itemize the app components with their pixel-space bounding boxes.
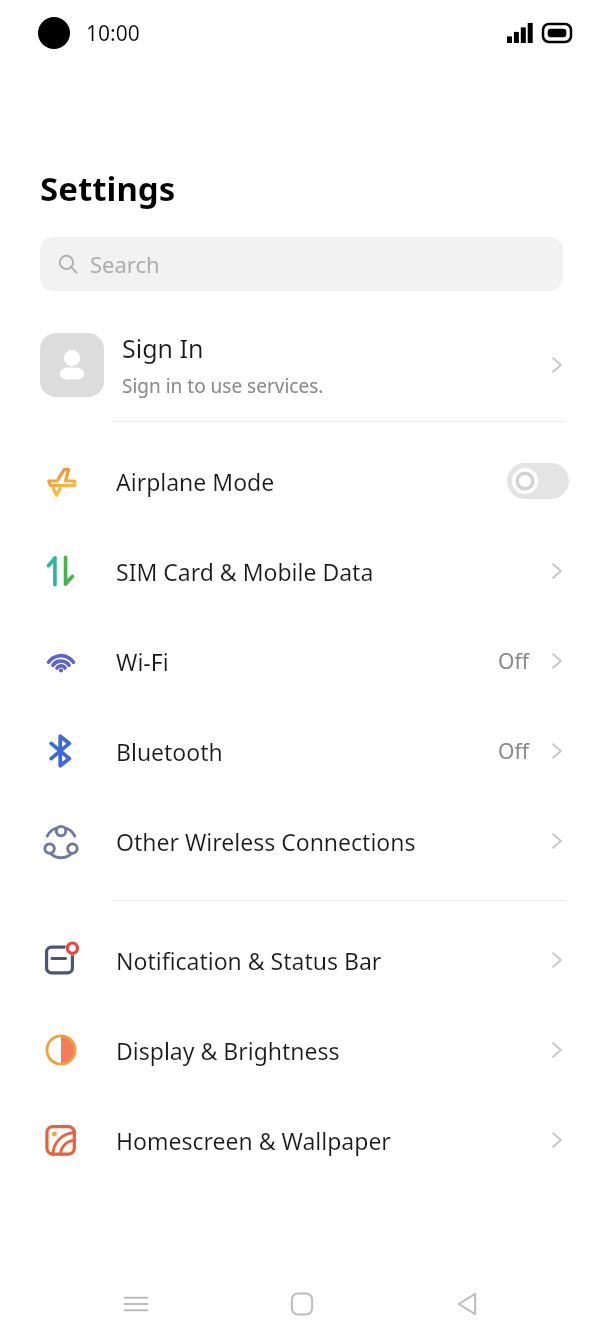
button[interactable]: Airplane Mode toggle, off bbox=[507, 463, 569, 499]
staticText: Sign In bbox=[122, 331, 204, 365]
staticText: Bluetooth bbox=[116, 736, 223, 767]
staticText: 10:00 bbox=[86, 19, 140, 48]
staticText: Notification & Status Bar bbox=[116, 945, 382, 976]
staticText: Display & Brightness bbox=[116, 1035, 340, 1066]
button[interactable]: Wi-Fi bbox=[0, 616, 603, 706]
button[interactable]: Sign In bbox=[0, 319, 603, 411]
button[interactable]: Homescreen & Wallpaper bbox=[0, 1095, 603, 1185]
button[interactable]: Display & Brightness bbox=[0, 1005, 603, 1095]
staticText: Off bbox=[498, 647, 529, 676]
staticText: SIM Card & Mobile Data bbox=[116, 556, 374, 587]
staticText: Homescreen & Wallpaper bbox=[116, 1125, 391, 1156]
button[interactable]: Airplane Mode bbox=[0, 436, 603, 526]
button[interactable]: Notification & Status Bar bbox=[0, 915, 603, 1005]
staticText: Other Wireless Connections bbox=[116, 826, 416, 857]
staticText: Settings bbox=[40, 166, 176, 211]
button[interactable]: Search bbox=[40, 237, 563, 291]
button[interactable]: Bluetooth bbox=[0, 706, 603, 796]
staticText: Wi-Fi bbox=[116, 646, 169, 677]
button[interactable]: SIM Card & Mobile Data bbox=[0, 526, 603, 616]
button[interactable]: Back bbox=[437, 1274, 497, 1334]
button[interactable]: Other Wireless Connections bbox=[0, 796, 603, 886]
staticText: Sign in to use services. bbox=[122, 373, 324, 399]
staticText: Airplane Mode bbox=[116, 466, 275, 497]
button[interactable]: Home bbox=[272, 1274, 332, 1334]
staticText: Off bbox=[498, 737, 529, 766]
button[interactable]: Recent apps bbox=[106, 1274, 166, 1334]
staticText: Search bbox=[90, 249, 160, 279]
